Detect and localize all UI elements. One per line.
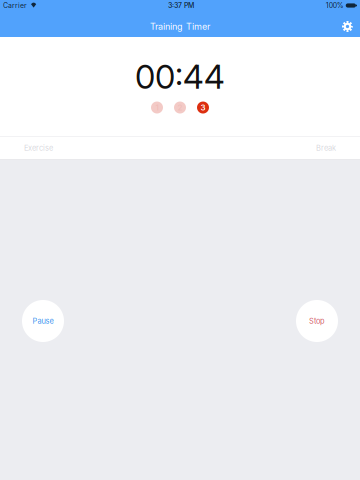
button[interactable]: Stop [296, 300, 338, 342]
staticText: 1 [155, 103, 158, 112]
button[interactable]: Settings [335, 17, 360, 36]
staticText: Pause [32, 316, 53, 325]
staticText: Carrier [3, 1, 27, 10]
staticText: 2 [177, 103, 182, 112]
staticText: 3 [200, 103, 205, 112]
button[interactable]: Pause [22, 300, 64, 342]
button[interactable]: Exercise [24, 136, 53, 159]
staticText: 100% [326, 1, 344, 10]
staticText: 3:37 PM [168, 1, 194, 10]
staticText: 00:44 [135, 57, 225, 96]
staticText: Break [316, 143, 336, 152]
staticText: Stop [309, 316, 325, 325]
staticText: Exercise [24, 143, 53, 152]
staticText: Training Timer [150, 21, 210, 32]
button[interactable]: Break [316, 136, 336, 159]
